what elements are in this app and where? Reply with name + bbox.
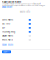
staticText: Mute Alerts [2,39,13,41]
button[interactable]: Mute Alerts [2,38,31,42]
staticText: Submit [3,50,10,53]
button[interactable]: Some Name [2,18,31,22]
staticText: More Info [20,11,30,13]
staticText: sed do eiusmod tempor incididunt ut labo… [2,4,45,6]
staticText: Incoming Msg [2,31,15,33]
staticText: Set Info [2,23,10,25]
staticText: Display Name [2,35,13,37]
button[interactable]: Read more [2,6,12,8]
staticText: Read more [2,6,12,8]
button[interactable]: Show more [2,44,13,46]
staticText: Lorem ipsum dolor sit amet, consectetur … [2,3,41,5]
button[interactable]: Qty [2,26,31,30]
button[interactable]: Set Info [2,22,31,26]
staticText: Qty [2,27,5,29]
staticText: Show more [2,44,13,46]
staticText: Some Name [2,19,13,21]
staticText: Application Name [2,1,21,3]
button[interactable]: Display Name [2,34,31,38]
button[interactable]: Incoming Msg [2,30,31,34]
button[interactable]: Submit [2,50,11,53]
